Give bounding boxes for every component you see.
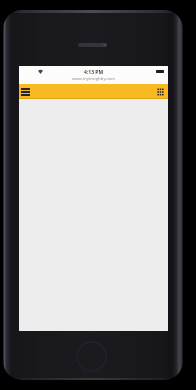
button[interactable]: Apps grid xyxy=(157,88,164,96)
staticText: www.myinsightly.com xyxy=(72,76,115,82)
button[interactable]: Open navigation menu xyxy=(21,88,30,96)
staticText: 4:13 PM xyxy=(84,69,104,76)
